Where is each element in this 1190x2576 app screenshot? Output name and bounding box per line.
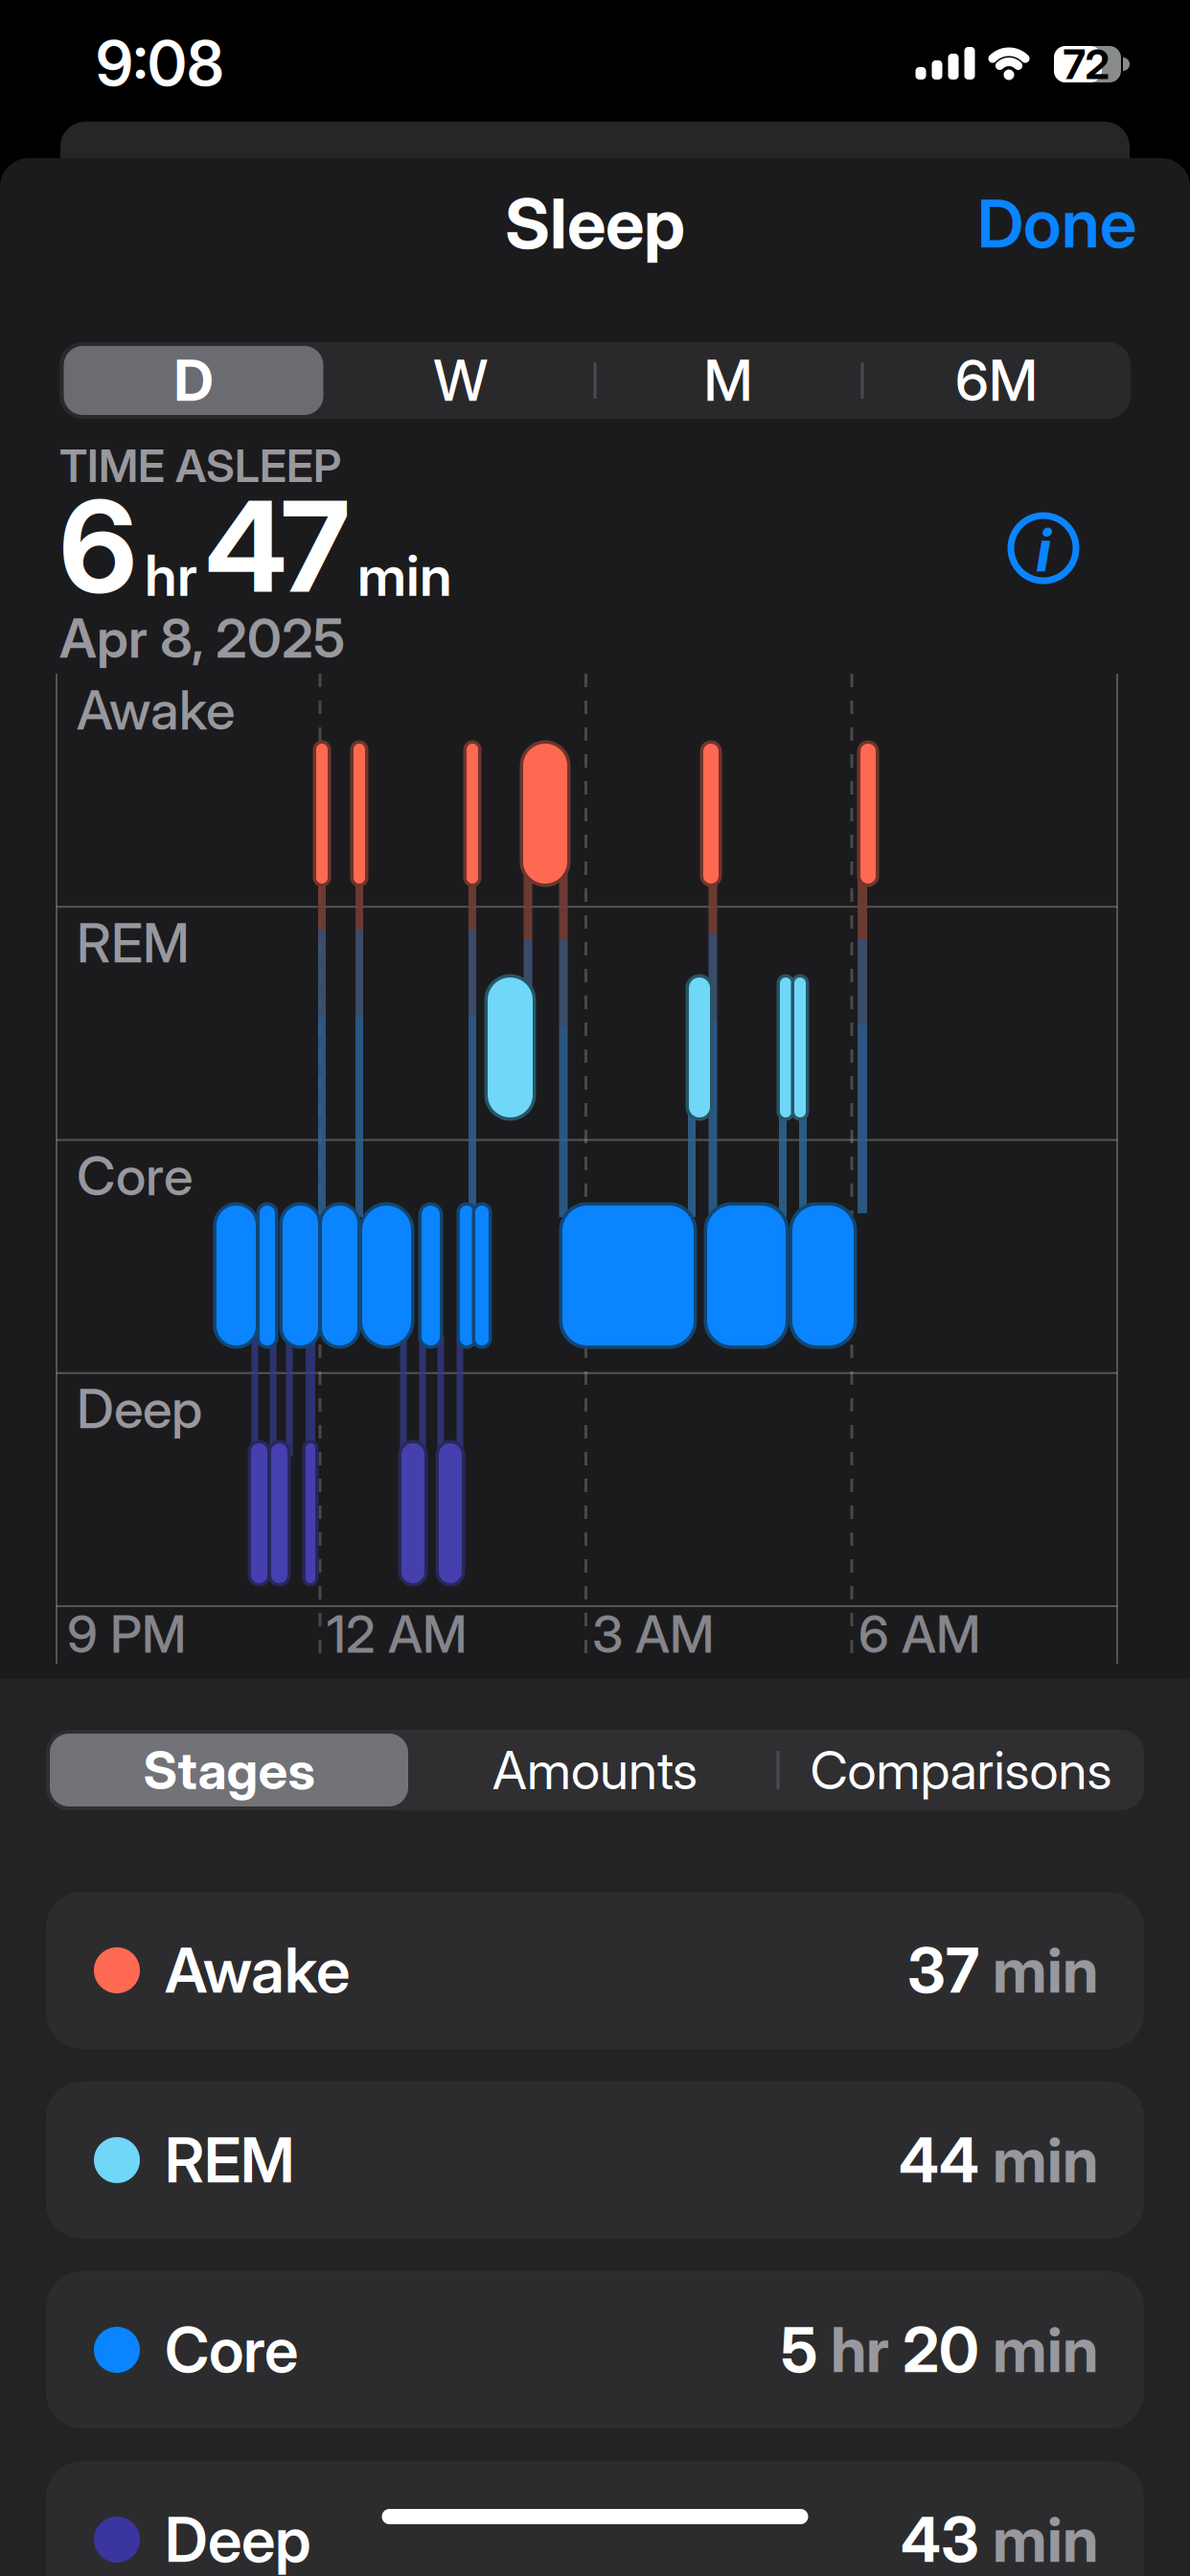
staticText: Apr 8, 2025 [59,607,345,670]
staticText: W [434,347,488,414]
button[interactable]: Done [977,184,1136,262]
staticText: Stages [143,1739,315,1801]
staticText: Awake [77,678,235,742]
staticText: hr [145,542,197,609]
button[interactable]: Comparisons [782,1734,1140,1806]
staticText: Sleep [505,183,685,264]
button[interactable]: M [598,346,858,415]
button[interactable]: REM [46,2081,1144,2239]
staticText: 5 [781,2314,817,2386]
button[interactable]: W [331,346,591,415]
staticText: M [704,347,753,414]
staticText: Deep [165,2503,311,2576]
staticText: min [993,2314,1098,2386]
button[interactable]: Core [46,2271,1144,2428]
staticText: min [357,542,452,609]
staticText: Amounts [492,1739,698,1801]
staticText: 43 [901,2503,979,2576]
staticText: REM [77,911,190,975]
staticText: Core [77,1144,193,1208]
staticText: 37 [907,1934,979,2006]
staticText: 3 AM [592,1604,714,1664]
button[interactable]: Deep [46,2461,1144,2576]
button[interactable]: 6M [867,346,1126,415]
staticText: hr [831,2314,889,2386]
staticText: REM [165,2124,294,2196]
staticText: D [174,347,213,414]
staticText: 72 [1063,40,1110,88]
staticText: Awake [165,1934,350,2006]
staticText: 6 AM [858,1604,980,1664]
staticText: Done [977,184,1136,262]
button[interactable]: More info [1009,514,1078,583]
staticText: Core [165,2314,298,2386]
staticText: min [993,1934,1098,2006]
staticText: Comparisons [810,1739,1112,1801]
button[interactable]: Awake [46,1892,1144,2049]
staticText: 12 AM [327,1604,467,1664]
staticText: TIME ASLEEP [59,439,341,492]
button[interactable]: D [64,346,323,415]
staticText: min [993,2124,1098,2196]
button[interactable]: Amounts [416,1734,774,1806]
staticText: 47 [205,472,350,620]
staticText: 6M [955,347,1038,414]
staticText: 6 [59,472,137,620]
staticText: 9 PM [67,1604,186,1664]
staticText: 44 [899,2124,979,2196]
staticText: 20 [903,2314,979,2386]
staticText: 9:08 [96,27,224,99]
staticText: i [1036,515,1051,585]
staticText: Deep [77,1377,202,1440]
button[interactable]: Stages [50,1734,408,1806]
staticText: min [993,2503,1098,2576]
